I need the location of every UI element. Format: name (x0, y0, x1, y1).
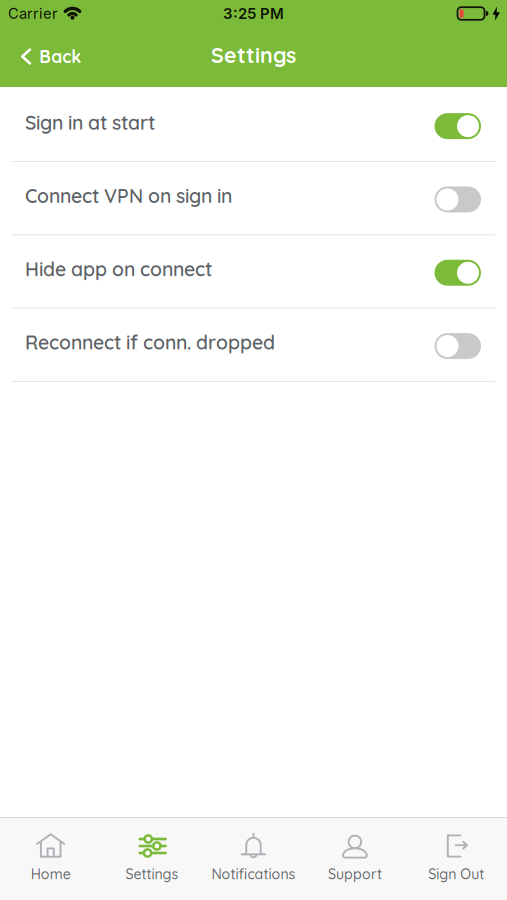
button[interactable]: Settings (101, 832, 203, 883)
staticText: Notifications (211, 865, 295, 883)
button[interactable]: Support (304, 832, 406, 883)
button[interactable]: Hide app on connect (434, 260, 481, 286)
staticText: Home (31, 865, 71, 883)
button[interactable]: Home (0, 832, 101, 883)
button[interactable]: Sign in at start (434, 113, 481, 139)
button[interactable]: Reconnect if conn. dropped (434, 333, 481, 359)
button[interactable]: Back (0, 36, 81, 78)
staticText: Hide app on connect (25, 257, 212, 281)
staticText: Back (39, 45, 81, 67)
staticText: Support (328, 865, 382, 883)
button[interactable]: Sign Out (406, 832, 507, 883)
button[interactable]: Connect VPN on sign in (434, 186, 481, 212)
button[interactable]: Notifications (203, 832, 304, 883)
staticText: Reconnect if conn. dropped (25, 330, 275, 354)
staticText: Sign in at start (25, 110, 155, 135)
staticText: Sign Out (428, 865, 484, 883)
staticText: 3:25 PM (223, 4, 284, 23)
staticText: Settings (126, 865, 179, 883)
staticText: Connect VPN on sign in (25, 184, 232, 208)
staticText: Settings (211, 42, 296, 68)
staticText: Carrier (8, 5, 58, 22)
